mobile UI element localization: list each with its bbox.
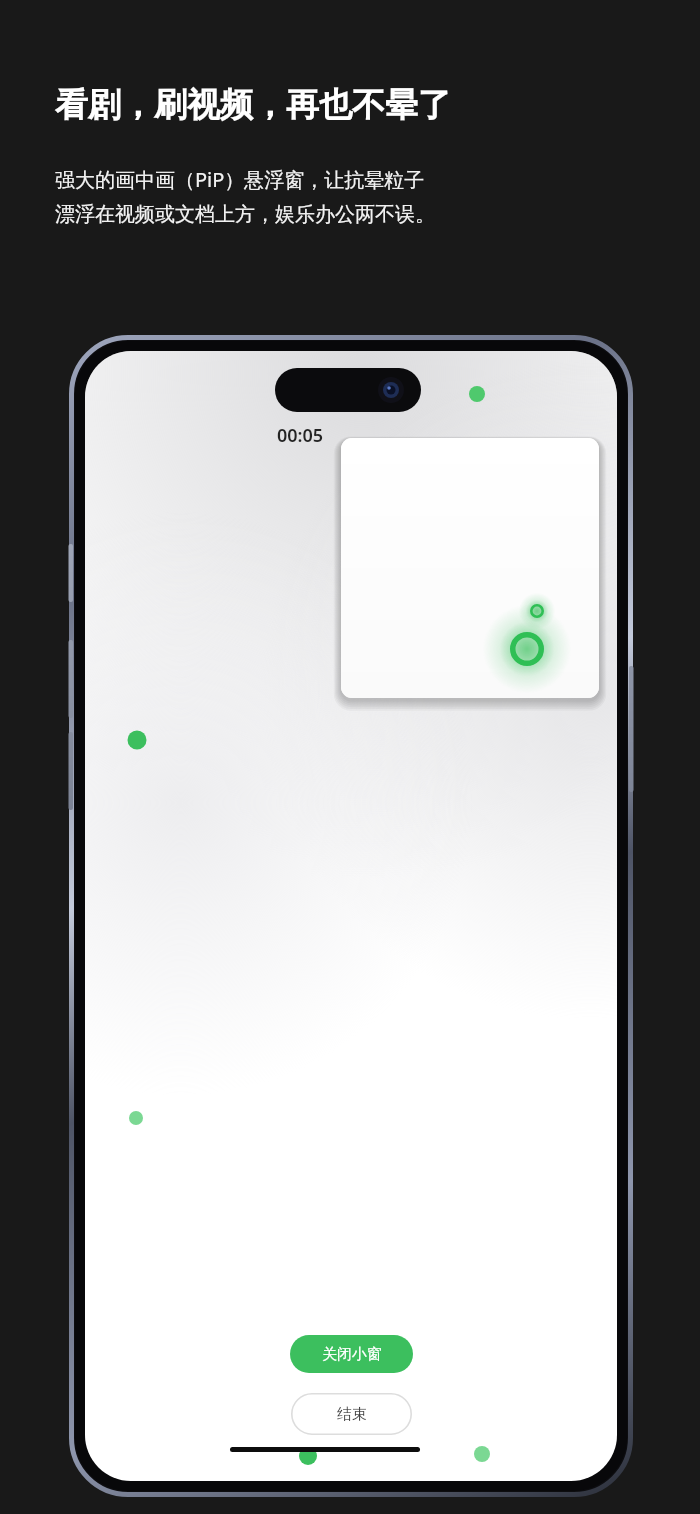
button[interactable] xyxy=(341,438,599,698)
button[interactable]: 关闭小窗 xyxy=(290,1335,413,1373)
staticText: 强大的画中画（PiP）悬浮窗，让抗晕粒子 漂浮在视频或文档上方，娱乐办公两不误。 xyxy=(55,166,435,227)
staticText: 关闭小窗 xyxy=(322,1345,382,1364)
staticText: 看剧，刷视频，再也不晕了 xyxy=(55,84,451,126)
staticText: 结束 xyxy=(337,1405,367,1424)
staticText: 00:05 xyxy=(277,423,324,448)
button[interactable]: 结束 xyxy=(291,1393,412,1435)
